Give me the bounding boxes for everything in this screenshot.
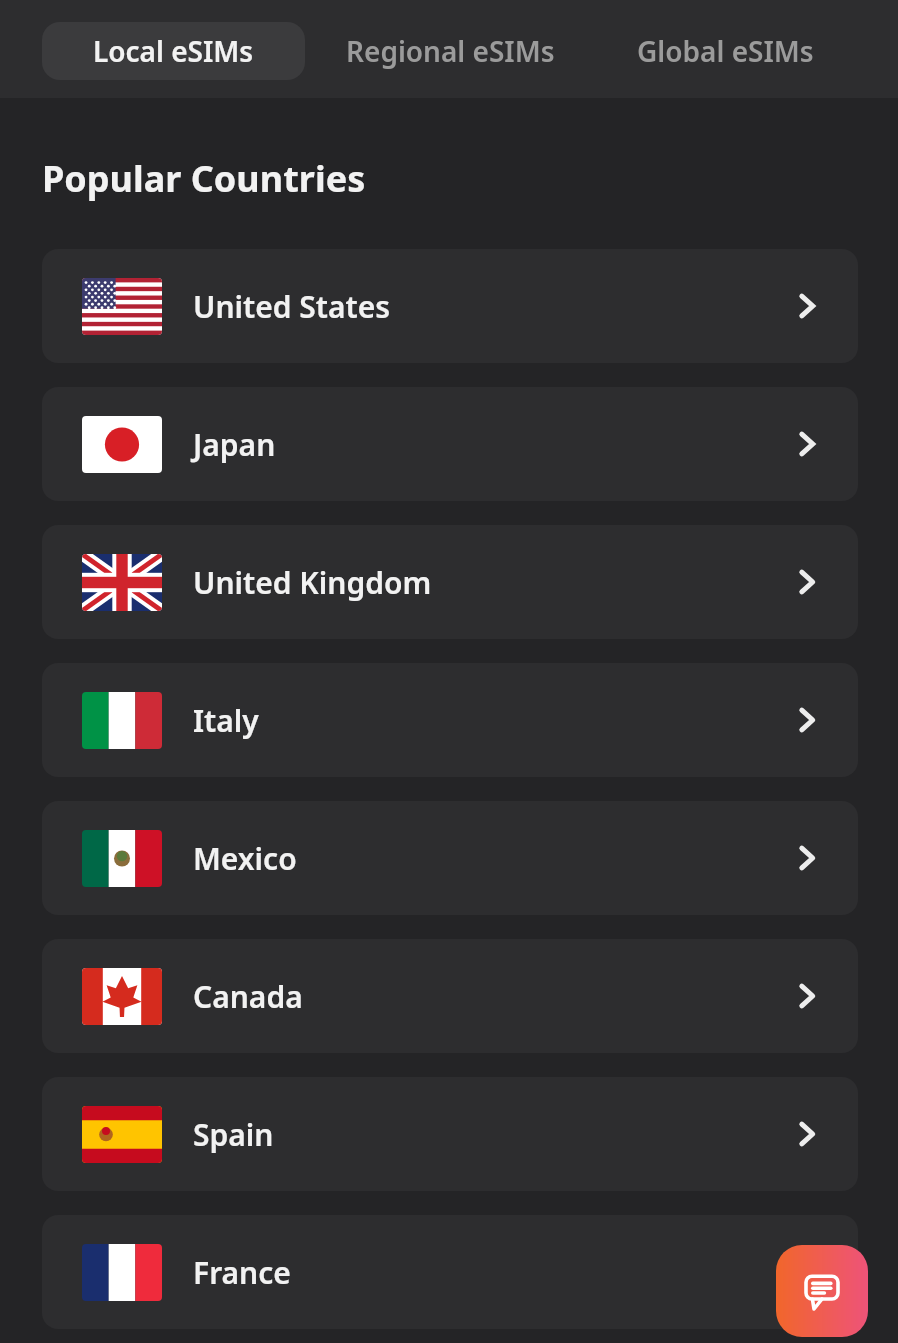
button[interactable]: United Kingdom bbox=[42, 525, 858, 639]
staticText: Spain bbox=[193, 1114, 794, 1155]
button[interactable]: Mexico bbox=[42, 801, 858, 915]
staticText: Global eSIMs bbox=[637, 32, 814, 70]
staticText: United Kingdom bbox=[193, 562, 794, 603]
staticText: France bbox=[193, 1252, 794, 1293]
staticText: Italy bbox=[193, 700, 794, 741]
staticText: Mexico bbox=[193, 838, 794, 879]
staticText: Popular Countries bbox=[42, 154, 366, 203]
button[interactable]: Local eSIMs bbox=[42, 22, 305, 80]
button[interactable]: United States bbox=[42, 249, 858, 363]
button[interactable]: Canada bbox=[42, 939, 858, 1053]
button[interactable]: Italy bbox=[42, 663, 858, 777]
staticText: Local eSIMs bbox=[93, 32, 254, 70]
button[interactable] bbox=[776, 1245, 868, 1337]
staticText: Japan bbox=[193, 424, 794, 465]
staticText: United States bbox=[193, 286, 794, 327]
button[interactable]: Spain bbox=[42, 1077, 858, 1191]
staticText: Regional eSIMs bbox=[346, 32, 555, 70]
button[interactable]: Global eSIMs bbox=[615, 22, 835, 80]
button[interactable]: France bbox=[42, 1215, 858, 1329]
staticText: Canada bbox=[193, 976, 794, 1017]
button[interactable]: Japan bbox=[42, 387, 858, 501]
button[interactable]: Regional eSIMs bbox=[330, 22, 570, 80]
